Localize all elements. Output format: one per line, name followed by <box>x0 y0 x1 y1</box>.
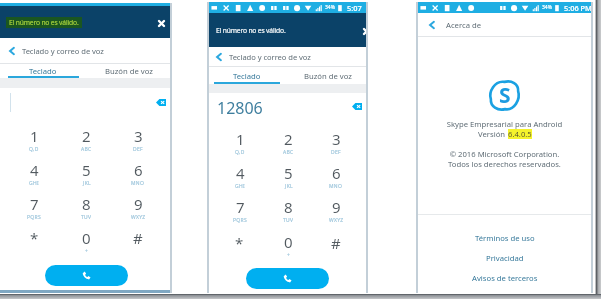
staticText: 1 <box>236 129 245 149</box>
button[interactable]: 9 <box>112 187 164 221</box>
staticText: 3 <box>134 126 143 146</box>
staticText: GHI <box>29 180 39 187</box>
staticText: Buzón de voz <box>105 66 153 76</box>
staticText: Teclado <box>29 66 57 76</box>
staticText: S <box>499 81 511 110</box>
button[interactable]: 7 <box>215 190 264 225</box>
button[interactable]: Borrar <box>154 95 168 109</box>
button[interactable]: Términos de uso <box>416 233 593 243</box>
staticText: 8 <box>82 194 91 214</box>
staticText: PQRS <box>233 217 247 224</box>
staticText: 34% <box>542 4 552 11</box>
button[interactable]: Buzón de voz <box>86 64 172 78</box>
staticText: Privacidad <box>486 253 524 263</box>
button[interactable]: Borrar <box>350 99 364 113</box>
button[interactable]: 2 <box>264 122 312 156</box>
button[interactable]: Teclado y correo de voz <box>0 38 172 63</box>
button[interactable]: 6 <box>112 153 164 187</box>
staticText: Versión <box>478 129 508 139</box>
button[interactable]: Teclado <box>0 64 86 78</box>
button[interactable]: 4 <box>8 153 60 187</box>
button[interactable]: Llamar <box>246 268 329 289</box>
button[interactable]: # <box>312 225 360 260</box>
staticText: 4 <box>236 163 245 183</box>
staticText: 9 <box>134 194 143 214</box>
staticText: 6 <box>134 160 143 180</box>
button[interactable]: # <box>112 221 164 255</box>
staticText: 3 <box>332 129 341 149</box>
button[interactable]: 1 <box>215 122 264 156</box>
staticText: 34% <box>325 4 335 11</box>
button[interactable]: 8 <box>60 187 112 221</box>
button[interactable]: Teclado <box>207 67 287 84</box>
staticText: TUV <box>81 214 92 221</box>
button[interactable]: 3 <box>312 122 360 156</box>
button[interactable]: 8 <box>264 190 312 225</box>
staticText: MNO <box>329 183 343 190</box>
button[interactable]: Llamar <box>45 265 128 286</box>
staticText: 9 <box>332 197 341 217</box>
staticText: PQRS <box>27 214 41 221</box>
staticText: 5:06 PM <box>564 3 592 13</box>
staticText: # <box>331 233 341 253</box>
staticText: El número no es válido. <box>216 26 286 35</box>
button[interactable]: 7 <box>8 187 60 221</box>
button[interactable]: * <box>8 221 60 255</box>
staticText: 1 <box>30 126 39 146</box>
staticText: 4 <box>30 160 39 180</box>
staticText: WXYZ <box>131 214 146 221</box>
staticText: * <box>30 228 39 248</box>
button[interactable]: 9 <box>312 190 360 225</box>
button[interactable]: 5 <box>264 156 312 190</box>
button[interactable]: 2 <box>60 120 112 153</box>
staticText: ABC <box>283 149 294 156</box>
staticText: El número no es válido. <box>9 18 79 27</box>
staticText: 5:07 PM <box>347 3 367 13</box>
staticText: 0 <box>82 228 91 248</box>
button[interactable]: 1 <box>8 120 60 153</box>
staticText: * <box>235 233 244 253</box>
staticText: Buzón de voz <box>304 71 352 81</box>
staticText: Teclado y correo de voz <box>22 46 104 56</box>
staticText: 12806 <box>217 97 263 119</box>
staticText: MNO <box>131 180 145 187</box>
staticText: + <box>287 252 291 259</box>
button[interactable]: Privacidad <box>416 253 593 263</box>
button[interactable]: * <box>215 225 264 260</box>
staticText: WXYZ <box>329 217 344 224</box>
staticText: 5 <box>284 163 293 183</box>
staticText: Teclado y correo de voz <box>229 52 311 62</box>
staticText: Q,D <box>235 149 245 156</box>
staticText: 6 <box>332 163 341 183</box>
staticText: ABC <box>81 146 92 153</box>
staticText: TUV <box>283 217 294 224</box>
button[interactable]: Teclado y correo de voz <box>207 47 368 66</box>
staticText: JKL <box>285 183 293 190</box>
button[interactable]: Buzón de voz <box>287 67 368 84</box>
button[interactable]: 3 <box>112 120 164 153</box>
staticText: Q,D <box>29 146 39 153</box>
button[interactable]: Avisos de terceros <box>416 273 593 283</box>
staticText: © 2016 Microsoft Corporation. <box>416 149 593 159</box>
button[interactable]: Acerca de <box>416 13 593 36</box>
staticText: Términos de uso <box>475 233 535 243</box>
staticText: 2 <box>82 126 91 146</box>
staticText: 2 <box>284 129 293 149</box>
staticText: Avisos de terceros <box>472 273 538 283</box>
staticText: 7 <box>236 197 245 217</box>
button[interactable]: 6 <box>312 156 360 190</box>
staticText: 8 <box>284 197 293 217</box>
button[interactable]: 0 <box>60 221 112 255</box>
staticText: DEF <box>331 149 341 156</box>
staticText: GHI <box>235 183 245 190</box>
button[interactable]: 4 <box>215 156 264 190</box>
button[interactable]: Cerrar <box>154 16 168 30</box>
button[interactable]: 0 <box>264 225 312 260</box>
staticText: 0 <box>284 232 293 252</box>
staticText: 6.4.0.5 <box>508 129 532 139</box>
button[interactable]: 5 <box>60 153 112 187</box>
staticText: # <box>133 228 143 248</box>
button[interactable]: Cerrar <box>359 24 373 38</box>
staticText: 7 <box>30 194 39 214</box>
staticText: Acerca de <box>446 20 482 30</box>
